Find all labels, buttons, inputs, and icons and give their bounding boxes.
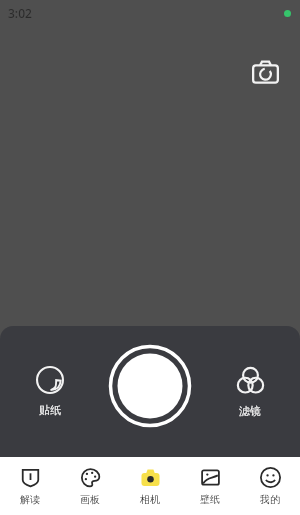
staticText: 解读 <box>20 493 40 506</box>
staticText: 壁纸 <box>200 493 220 506</box>
staticText: 相机 <box>140 493 160 506</box>
button[interactable]: 滤镜 <box>207 360 293 424</box>
button[interactable]: 壁纸 <box>180 461 240 512</box>
button[interactable]: 画板 <box>60 461 120 512</box>
staticText: 贴纸 <box>39 403 61 417</box>
button[interactable]: Switch camera <box>246 53 284 91</box>
button[interactable]: Shutter <box>107 343 193 429</box>
button[interactable]: 我的 <box>240 461 300 512</box>
staticText: 3:02 <box>8 5 32 21</box>
button[interactable]: 解读 <box>0 461 60 512</box>
button[interactable]: 相机 <box>120 461 180 512</box>
button[interactable]: 贴纸 <box>7 360 93 423</box>
staticText: 我的 <box>260 493 280 506</box>
staticText: 画板 <box>80 493 100 506</box>
staticText: 滤镜 <box>239 404 261 418</box>
